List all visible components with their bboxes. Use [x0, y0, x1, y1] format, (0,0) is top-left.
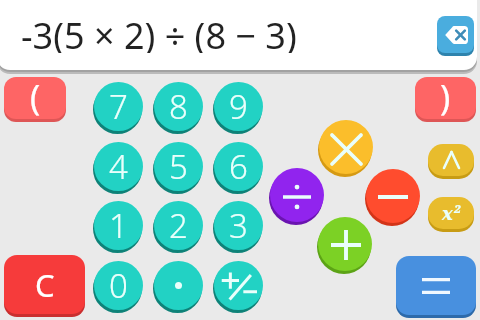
staticText: 7: [109, 84, 128, 129]
staticText: -3(5 × 2) ÷ (8 − 3): [21, 11, 297, 53]
button[interactable]: Clear: [4, 255, 85, 314]
button[interactable]: Plus: [318, 217, 372, 271]
staticText: 9: [229, 84, 248, 129]
button[interactable]: 0: [94, 261, 143, 310]
button[interactable]: Square: [428, 197, 474, 229]
button[interactable]: Decimal point: [154, 261, 203, 310]
button[interactable]: 3: [214, 201, 263, 250]
button[interactable]: 7: [94, 82, 143, 131]
button[interactable]: Minus: [366, 169, 420, 223]
staticText: ): [440, 77, 451, 116]
staticText: 5: [169, 144, 188, 189]
staticText: 3: [229, 203, 248, 248]
staticText: (: [30, 77, 41, 116]
staticText: 2: [169, 203, 188, 248]
button[interactable]: Open parenthesis: [4, 77, 66, 119]
staticText: 1: [109, 203, 128, 248]
button[interactable]: Close parenthesis: [415, 77, 476, 119]
staticText: 8: [169, 84, 188, 129]
staticText: C: [35, 264, 55, 306]
button[interactable]: Plus minus: [214, 261, 263, 310]
button[interactable]: 9: [214, 82, 263, 131]
button[interactable]: 1: [94, 201, 143, 250]
button[interactable]: 5: [154, 142, 203, 191]
staticText: 0: [109, 263, 128, 308]
button[interactable]: Multiply: [319, 120, 373, 174]
button[interactable]: 8: [154, 82, 203, 131]
staticText: 4: [109, 144, 128, 189]
button[interactable]: 4: [94, 142, 143, 191]
button[interactable]: Power: [428, 144, 474, 176]
button[interactable]: Divide: [270, 168, 324, 222]
button[interactable]: Backspace: [437, 16, 474, 53]
button[interactable]: Equals: [396, 256, 476, 315]
button[interactable]: 6: [214, 142, 263, 191]
staticText: 6: [229, 144, 248, 189]
button[interactable]: 2: [154, 201, 203, 250]
staticText: 𝒙²: [442, 201, 460, 226]
